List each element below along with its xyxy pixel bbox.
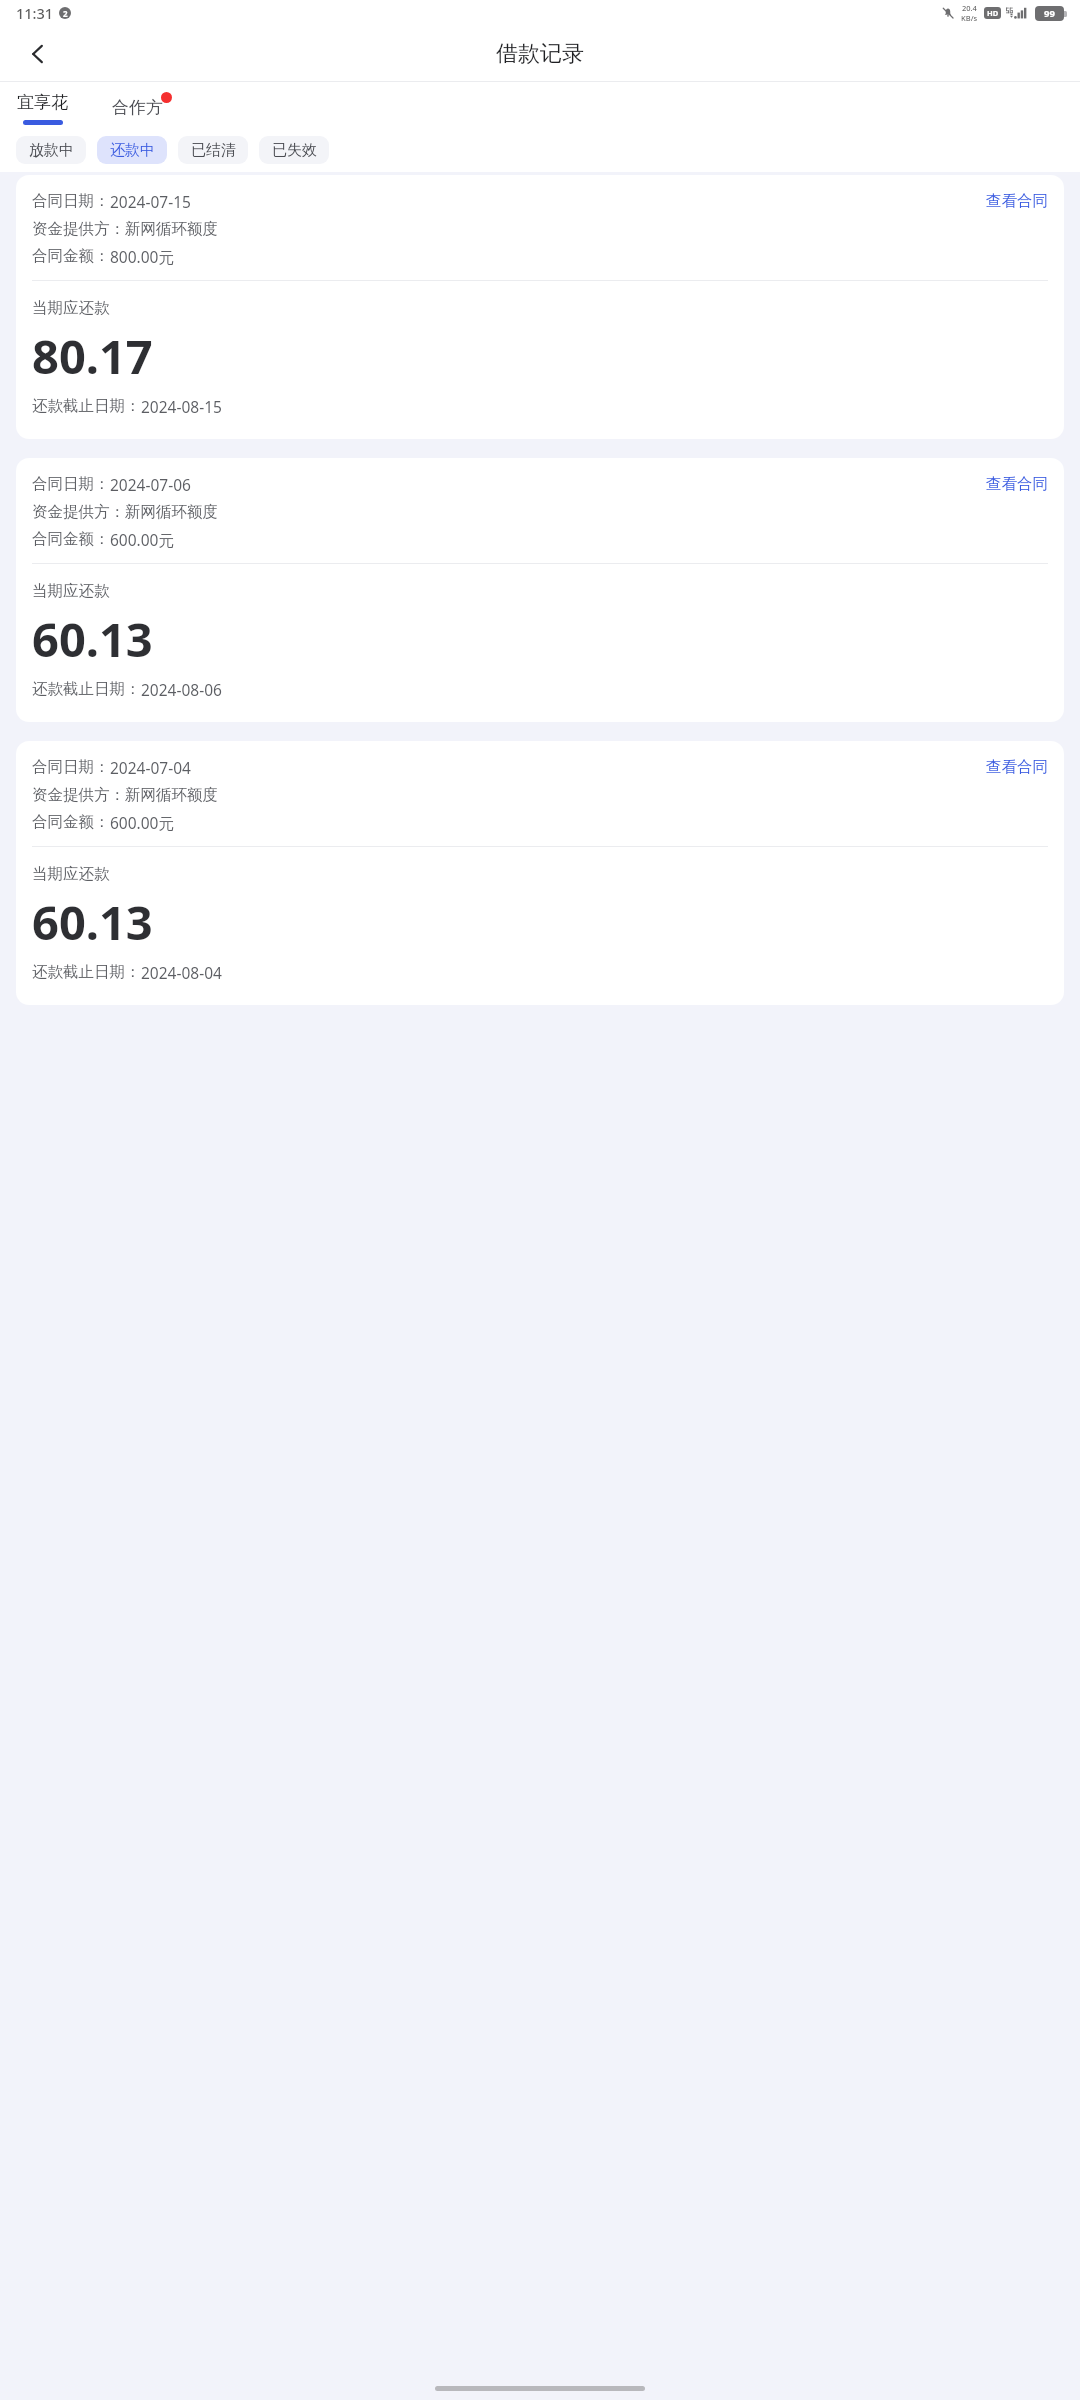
staticText: 还款中: [110, 141, 155, 160]
staticText: 60.13: [32, 890, 153, 954]
staticText: 资金提供方：: [32, 785, 125, 805]
staticText: 资金提供方：: [32, 502, 125, 522]
staticText: 当期应还款: [32, 864, 110, 884]
staticText: KB/s: [961, 13, 978, 23]
staticText: 80.17: [32, 324, 153, 388]
staticText: 2024-08-06: [141, 679, 222, 700]
staticText: 查看合同: [986, 474, 1048, 494]
staticText: 查看合同: [986, 757, 1048, 777]
button[interactable]: 合同日期：: [16, 175, 1064, 439]
staticText: 800.00元: [110, 246, 174, 267]
button[interactable]: 宜享花: [17, 92, 68, 125]
button[interactable]: 查看合同: [986, 191, 1048, 211]
button[interactable]: 合同日期：: [16, 458, 1064, 722]
staticText: 借款记录: [496, 40, 584, 68]
staticText: 2024-07-15: [110, 191, 191, 212]
staticText: 合同金额：: [32, 246, 110, 266]
staticText: 新网循环额度: [125, 785, 218, 805]
staticText: 11:31: [16, 3, 54, 23]
staticText: 还款截止日期：: [32, 679, 141, 699]
button[interactable]: Back: [14, 30, 62, 78]
staticText: 2024-08-15: [141, 396, 222, 417]
staticText: 600.00元: [110, 812, 174, 833]
staticText: 600.00元: [110, 529, 174, 550]
staticText: 60.13: [32, 607, 153, 671]
staticText: 2024-08-04: [141, 962, 222, 983]
staticText: 2: [63, 8, 68, 19]
button[interactable]: 还款中: [97, 136, 167, 164]
staticText: 合作方: [112, 97, 163, 118]
staticText: 当期应还款: [32, 581, 110, 601]
staticText: 新网循环额度: [125, 502, 218, 522]
staticText: 还款截止日期：: [32, 962, 141, 982]
button[interactable]: 放款中: [16, 136, 86, 164]
staticText: 当期应还款: [32, 298, 110, 318]
button[interactable]: 已结清: [178, 136, 248, 164]
staticText: 放款中: [29, 141, 74, 160]
staticText: 查看合同: [986, 191, 1048, 211]
staticText: 还款截止日期：: [32, 396, 141, 416]
staticText: 宜享花: [17, 92, 68, 113]
staticText: 新网循环额度: [125, 219, 218, 239]
staticText: HD: [987, 8, 999, 18]
staticText: 合同金额：: [32, 812, 110, 832]
button[interactable]: 查看合同: [986, 474, 1048, 494]
staticText: 已结清: [191, 141, 236, 160]
staticText: 合同日期：: [32, 757, 110, 777]
staticText: 合同金额：: [32, 529, 110, 549]
staticText: 资金提供方：: [32, 219, 125, 239]
staticText: 2024-07-06: [110, 474, 191, 495]
staticText: 20.4: [962, 3, 977, 13]
button[interactable]: 查看合同: [986, 757, 1048, 777]
staticText: 合同日期：: [32, 474, 110, 494]
button[interactable]: 合作方: [112, 92, 172, 118]
button[interactable]: 合同日期：: [16, 741, 1064, 1005]
staticText: 合同日期：: [32, 191, 110, 211]
button[interactable]: 已失效: [259, 136, 329, 164]
staticText: 2024-07-04: [110, 757, 191, 778]
staticText: 已失效: [272, 141, 317, 160]
staticText: 99: [1044, 7, 1055, 20]
